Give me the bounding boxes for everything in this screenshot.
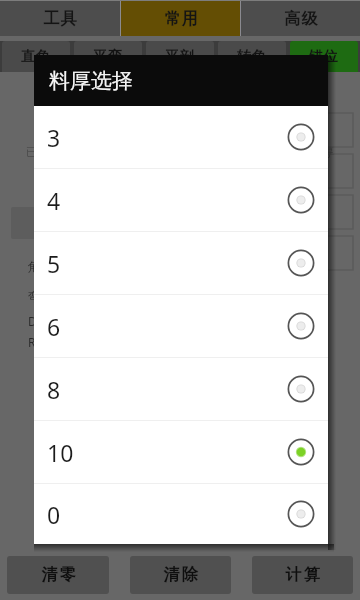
button[interactable]: 0 bbox=[34, 484, 328, 544]
staticText: 已知条件 bbox=[26, 144, 74, 159]
button[interactable]: 6 bbox=[34, 295, 328, 357]
staticText: 转角 bbox=[237, 48, 267, 66]
button[interactable]: 平剖 bbox=[146, 41, 214, 72]
staticText: 平剖 bbox=[165, 48, 195, 66]
button[interactable]: 输入框 1 bbox=[200, 110, 355, 151]
button[interactable]: 清除 bbox=[130, 556, 231, 594]
button[interactable]: 常用 bbox=[121, 1, 240, 36]
staticText: 10 bbox=[47, 437, 74, 468]
staticText: 6 bbox=[47, 311, 61, 342]
button[interactable]: 平弯 bbox=[74, 41, 142, 72]
button[interactable]: 5 bbox=[34, 232, 328, 294]
button[interactable]: 高级 bbox=[241, 1, 360, 36]
staticText: 工具 bbox=[43, 9, 77, 29]
staticText: 角度 bbox=[28, 259, 52, 274]
button[interactable]: 工具 bbox=[0, 1, 120, 36]
staticText: 料厚 bbox=[310, 144, 334, 159]
staticText: 弯曲 bbox=[28, 289, 52, 304]
button[interactable]: 清零 bbox=[7, 556, 109, 594]
staticText: R值 bbox=[28, 334, 48, 350]
button[interactable]: 直角 bbox=[2, 41, 70, 72]
staticText: 0 bbox=[47, 499, 61, 530]
button[interactable]: 10 bbox=[34, 421, 328, 483]
button[interactable]: 输入框 2 bbox=[200, 151, 355, 192]
staticText: 清零 bbox=[40, 565, 77, 585]
staticText: D值 bbox=[28, 313, 49, 329]
button[interactable]: 转角 bbox=[218, 41, 286, 72]
staticText: 料厚选择 bbox=[49, 68, 133, 94]
button[interactable]: 4 bbox=[34, 169, 328, 231]
button[interactable]: 8 bbox=[34, 358, 328, 420]
button[interactable]: 输入框 4 bbox=[200, 233, 355, 274]
staticText: 清除 bbox=[162, 565, 199, 585]
button[interactable]: 锚位 bbox=[290, 41, 358, 72]
staticText: 常用 bbox=[164, 9, 198, 29]
staticText: 5 bbox=[47, 248, 61, 279]
staticText: 平弯 bbox=[93, 48, 123, 66]
staticText: 3 bbox=[47, 122, 61, 153]
staticText: 数值 bbox=[268, 144, 292, 159]
staticText: 直角 bbox=[21, 48, 51, 66]
staticText: 高级 bbox=[284, 9, 318, 29]
staticText: 锚位 bbox=[309, 48, 339, 66]
staticText: 8 bbox=[47, 374, 61, 405]
button[interactable]: 料厚选择 bbox=[11, 207, 81, 239]
staticText: 计算 bbox=[284, 565, 321, 585]
button[interactable]: 计算 bbox=[252, 556, 353, 594]
button[interactable]: 输入框 3 bbox=[200, 192, 355, 233]
button[interactable]: 3 bbox=[34, 106, 328, 168]
staticText: 4 bbox=[47, 185, 61, 216]
